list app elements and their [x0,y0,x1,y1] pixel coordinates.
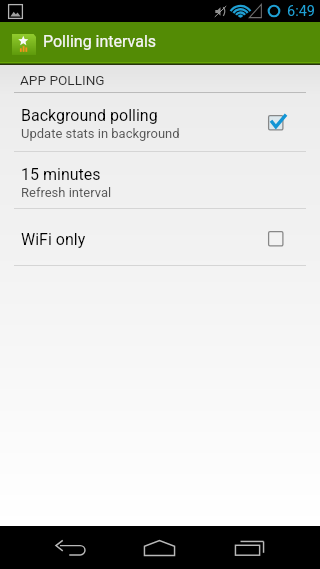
staticText: Refresh interval [21,185,112,200]
button[interactable]: Recent apps [217,526,283,569]
button[interactable]: Background polling [0,93,320,151]
button[interactable]: Toggle Background polling [266,113,290,137]
button[interactable]: Back [38,526,104,569]
button[interactable]: WiFi only [0,209,320,265]
staticText: Update stats in background [21,126,180,141]
staticText: APP POLLING [20,72,105,88]
staticText: 15 minutes [21,165,101,184]
button[interactable]: Toggle WiFi only [266,229,290,253]
staticText: WiFi only [21,230,86,249]
button[interactable]: 15 minutes [0,152,320,208]
staticText: Background polling [21,106,158,125]
button[interactable]: Polling intervals [0,22,320,62]
staticText: 6:49 [287,3,315,20]
button[interactable]: Home [127,526,193,569]
staticText: Polling intervals [43,32,157,51]
